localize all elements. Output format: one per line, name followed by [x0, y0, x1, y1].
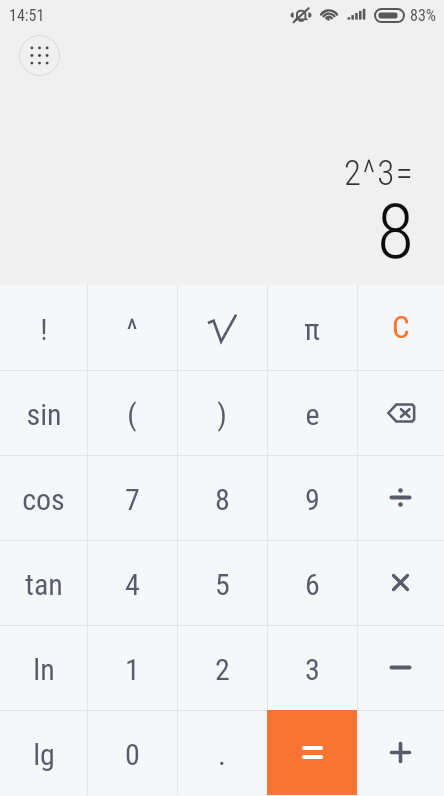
button[interactable]: 4 [87, 540, 177, 625]
button[interactable]: 6 [267, 540, 357, 625]
staticText: 7 [125, 482, 140, 517]
staticText: 8 [377, 187, 414, 276]
staticText: tan [25, 567, 63, 602]
button[interactable]: Plus [357, 710, 444, 795]
button[interactable]: 1 [87, 625, 177, 710]
button[interactable]: Multiply [357, 540, 444, 625]
staticText: π [304, 312, 320, 347]
button[interactable]: Apps [19, 35, 60, 76]
staticText: 1 [125, 652, 140, 687]
staticText: ) [217, 397, 227, 432]
staticText: . [218, 737, 226, 772]
button[interactable]: ln [0, 625, 87, 710]
staticText: 14:51 [9, 6, 45, 25]
staticText: lg [33, 737, 55, 772]
button[interactable]: 7 [87, 455, 177, 540]
button[interactable]: 0 [87, 710, 177, 795]
staticText: ( [127, 397, 137, 432]
button[interactable]: 5 [177, 540, 267, 625]
button[interactable]: π [267, 285, 357, 370]
staticText: sin [26, 397, 62, 432]
button[interactable]: lg [0, 710, 87, 795]
button[interactable]: ( [87, 370, 177, 455]
button[interactable]: Square root [177, 285, 267, 370]
button[interactable]: 3 [267, 625, 357, 710]
button[interactable]: 2 [177, 625, 267, 710]
button[interactable]: . [177, 710, 267, 795]
button[interactable]: tan [0, 540, 87, 625]
button[interactable]: Divide [357, 455, 444, 540]
button[interactable]: C [357, 285, 444, 370]
button[interactable]: 9 [267, 455, 357, 540]
button[interactable]: 8 [177, 455, 267, 540]
button[interactable]: cos [0, 455, 87, 540]
staticText: 6 [305, 567, 320, 602]
button[interactable]: Minus [357, 625, 444, 710]
button[interactable]: Equals [267, 710, 357, 795]
staticText: 5 [215, 567, 230, 602]
button[interactable]: ^ [87, 285, 177, 370]
staticText: 3 [305, 652, 320, 687]
staticText: ! [40, 312, 48, 347]
button[interactable]: ! [0, 285, 87, 370]
staticText: 2 [215, 652, 230, 687]
staticText: e [305, 397, 320, 432]
staticText: 0 [125, 737, 140, 772]
staticText: C [392, 309, 410, 345]
button[interactable]: e [267, 370, 357, 455]
staticText: 83% [410, 6, 436, 25]
button[interactable]: Backspace [357, 370, 444, 455]
staticText: 8 [215, 482, 230, 517]
staticText: cos [22, 482, 65, 517]
button[interactable]: ) [177, 370, 267, 455]
staticText: ^ [126, 312, 138, 347]
staticText: 2^3= [344, 153, 415, 194]
staticText: 9 [305, 482, 320, 517]
button[interactable]: sin [0, 370, 87, 455]
staticText: 4 [125, 567, 140, 602]
staticText: ln [33, 652, 55, 687]
